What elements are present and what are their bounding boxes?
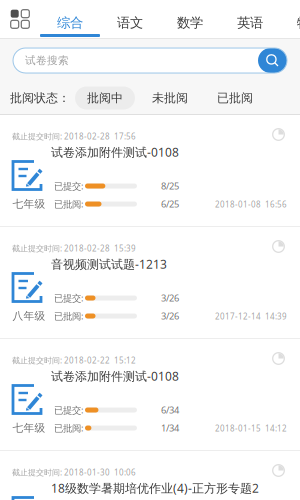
staticText: 8/25 (161, 180, 179, 192)
button[interactable]: 截止提交时间: 2018-01-30 10:06 (0, 451, 300, 500)
button[interactable]: 已批阅 (205, 86, 265, 109)
staticText: 八年级 (12, 309, 45, 322)
staticText: 综合 (57, 15, 83, 31)
button[interactable]: 截止提交时间: 2018-02-22 15:12 (0, 339, 300, 450)
staticText: 截止提交时间: 2018-01-30 10:06 (12, 467, 136, 478)
staticText: 2018-01-08 16:56 (215, 199, 287, 210)
staticText: 2018-01-15 14:12 (215, 423, 287, 434)
staticText: 6/34 (161, 404, 179, 416)
staticText: 18级数学暑期培优作业(4)-正方形专题2 (51, 480, 259, 496)
staticText: 2017-12-14 14:39 (215, 311, 287, 322)
staticText: 数学 (177, 15, 203, 31)
staticText: 3/26 (161, 292, 179, 304)
staticText: 6/25 (161, 198, 179, 210)
staticText: 七年级 (12, 197, 45, 210)
staticText: 音视频测试试题-1213 (51, 256, 167, 272)
staticText: 已提交: (54, 292, 84, 304)
button[interactable]: 英语 (220, 0, 280, 38)
button[interactable]: 语文 (100, 0, 160, 38)
staticText: 试卷添加附件测试-0108 (51, 144, 179, 160)
staticText: 截止提交时间: 2018-02-28 17:56 (12, 131, 136, 142)
staticText: 截止提交时间: 2018-02-28 15:39 (12, 243, 136, 254)
staticText: 未批阅 (152, 91, 188, 105)
staticText: 已提交: (54, 404, 84, 416)
staticText: 试卷添加附件测试-0108 (51, 368, 179, 384)
button[interactable]: 截止提交时间: 2018-02-28 17:56 (0, 115, 300, 226)
staticText: 3/26 (161, 310, 179, 322)
button[interactable]: Categories (0, 0, 40, 38)
staticText: 英语 (237, 15, 263, 31)
staticText: 1/34 (161, 422, 179, 434)
button[interactable]: 未批阅 (140, 86, 200, 109)
staticText: 已批阅: (54, 198, 84, 210)
staticText: 已批阅: (54, 310, 84, 322)
button[interactable]: 批阅中 (75, 86, 135, 109)
button[interactable]: Search (258, 48, 287, 73)
staticText: 批阅中 (87, 91, 123, 105)
staticText: 已提交: (54, 180, 84, 192)
staticText: 已批阅 (217, 91, 253, 105)
button[interactable]: 数学 (160, 0, 220, 38)
staticText: 七年级 (12, 421, 45, 434)
staticText: 语文 (117, 15, 143, 31)
staticText: 已批阅: (54, 422, 84, 434)
staticText: 批阅状态： (10, 91, 70, 105)
staticText: 截止提交时间: 2018-02-22 15:12 (12, 355, 136, 366)
staticText: 试卷搜索 (25, 54, 69, 67)
button[interactable]: 截止提交时间: 2018-02-28 15:39 (0, 227, 300, 338)
button[interactable]: 物理 (280, 0, 300, 38)
button[interactable]: 综合 (40, 0, 100, 38)
staticText: 物理 (297, 15, 300, 31)
